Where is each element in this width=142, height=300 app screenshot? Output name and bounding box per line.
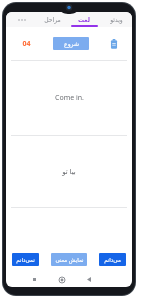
button[interactable]: Recent apps	[21, 272, 48, 287]
staticText: مراحل	[44, 16, 61, 23]
button[interactable]: می‌دانم	[99, 253, 126, 266]
button[interactable]: نمایش معنی	[51, 253, 87, 266]
button[interactable]: مراحل	[37, 12, 68, 27]
button[interactable]: لغت	[68, 12, 100, 27]
staticText: بیا تو	[62, 167, 76, 177]
button[interactable]: 04	[12, 27, 40, 60]
staticText: 04	[22, 39, 31, 49]
staticText: نمی‌دانم	[16, 257, 35, 263]
staticText: Come in.	[55, 93, 84, 103]
staticText: شروع	[64, 40, 79, 47]
button[interactable]: Word list	[102, 27, 126, 60]
staticText: نمایش معنی	[55, 256, 84, 263]
button[interactable]: شروع	[53, 37, 89, 50]
staticText: لغت	[78, 16, 90, 23]
button[interactable]: نمی‌دانم	[12, 253, 39, 266]
staticText: ویدئو	[110, 16, 123, 23]
button[interactable]: More options	[6, 12, 37, 27]
button[interactable]: ویدئو	[100, 12, 132, 27]
button[interactable]: Back	[75, 272, 102, 287]
button[interactable]: Home	[48, 272, 75, 287]
staticText: می‌دانم	[104, 257, 121, 263]
